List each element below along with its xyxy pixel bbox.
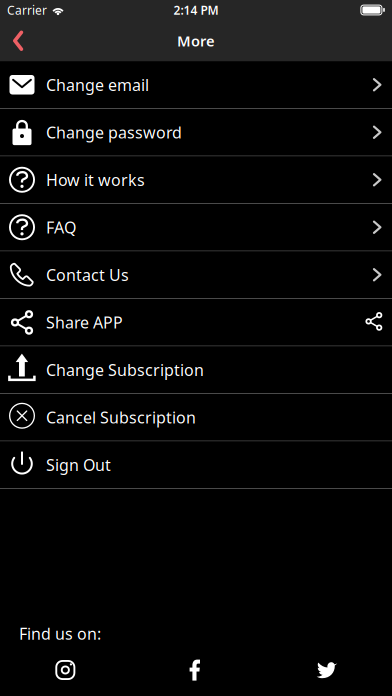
staticText: 2:14 PM: [173, 2, 218, 18]
button[interactable]: Instagram: [0, 655, 131, 685]
button[interactable]: Change email: [0, 61, 392, 109]
button[interactable]: Contact Us: [0, 251, 392, 299]
button[interactable]: Change password: [0, 109, 392, 156]
staticText: Share APP: [46, 312, 123, 333]
button[interactable]: Share APP: [0, 299, 392, 346]
button[interactable]: FAQ: [0, 204, 392, 251]
staticText: Change password: [46, 122, 182, 143]
staticText: More: [177, 31, 215, 50]
staticText: Carrier: [7, 2, 47, 18]
button[interactable]: How it works: [0, 156, 392, 204]
button[interactable]: Twitter: [261, 655, 392, 685]
button[interactable]: Cancel Subscription: [0, 394, 392, 441]
staticText: Sign Out: [46, 454, 111, 475]
button[interactable]: Back: [0, 20, 42, 62]
staticText: How it works: [46, 169, 145, 190]
button[interactable]: Facebook: [131, 655, 261, 685]
staticText: Cancel Subscription: [46, 407, 196, 428]
staticText: Contact Us: [46, 264, 129, 285]
staticText: Change Subscription: [46, 359, 204, 380]
button[interactable]: Change Subscription: [0, 346, 392, 394]
staticText: FAQ: [46, 217, 76, 238]
button[interactable]: Sign Out: [0, 441, 392, 489]
staticText: Change email: [46, 74, 149, 95]
staticText: Find us on:: [19, 623, 101, 644]
